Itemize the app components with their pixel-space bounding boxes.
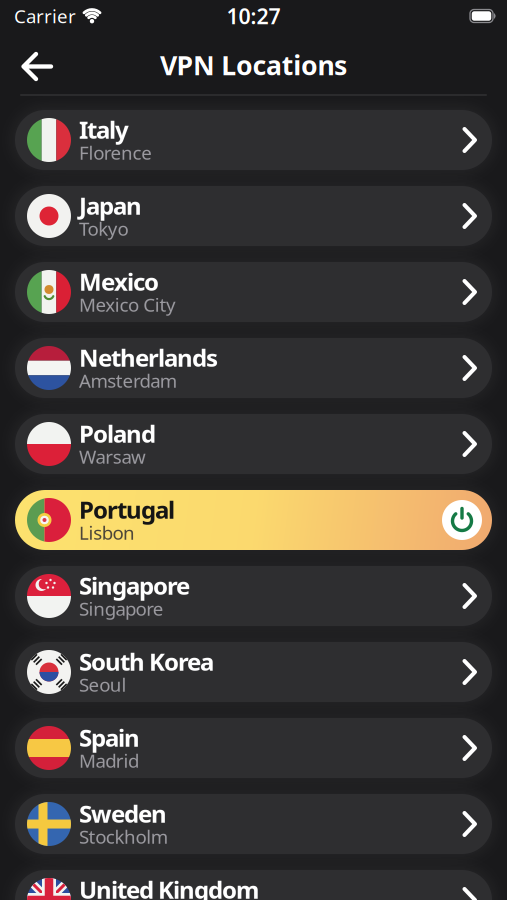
button[interactable]: United Kingdom [15,870,492,900]
staticText: VPN Locations [160,47,347,83]
staticText: Lisbon [79,520,135,545]
staticText: Italy [79,114,129,145]
staticText: Madrid [79,748,139,773]
button[interactable]: Poland [15,414,492,474]
button[interactable]: Japan [15,186,492,246]
staticText: Sweden [79,798,167,829]
button[interactable]: Sweden [15,794,492,854]
button[interactable]: Mexico [15,262,492,322]
staticText: Poland [79,418,156,449]
staticText: Portugal [79,494,175,525]
staticText: 10:27 [226,2,280,30]
button[interactable]: Portugal [15,490,492,550]
staticText: Warsaw [79,444,146,469]
staticText: Singapore [79,596,164,621]
staticText: Spain [79,722,140,753]
staticText: Florence [79,140,152,165]
staticText: Netherlands [79,342,218,373]
staticText: Carrier [14,4,76,28]
staticText: Singapore [79,570,190,601]
button[interactable]: Back [0,43,52,91]
staticText: South Korea [79,646,214,677]
staticText: Amsterdam [79,368,177,393]
button[interactable]: Netherlands [15,338,492,398]
staticText: United Kingdom [79,874,259,900]
staticText: Mexico City [79,292,176,317]
button[interactable]: Singapore [15,566,492,626]
button[interactable]: South Korea [15,642,492,702]
staticText: Seoul [79,672,126,697]
staticText: Tokyo [79,216,128,241]
staticText: Stockholm [79,824,168,849]
staticText: Mexico [79,266,159,297]
button[interactable]: Italy [15,110,492,170]
button[interactable]: Spain [15,718,492,778]
staticText: Japan [79,190,142,221]
